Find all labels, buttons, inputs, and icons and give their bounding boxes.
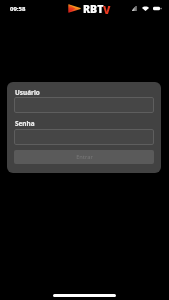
button[interactable]: Usuário [14, 97, 154, 113]
staticText: Entrar [76, 153, 93, 161]
button[interactable]: Senha [14, 129, 154, 145]
other: Wi-Fi [142, 6, 149, 11]
staticText: Senha [15, 119, 35, 128]
other: Battery [153, 6, 161, 11]
other: RBTV [66, 2, 108, 14]
staticText: RBT [83, 2, 104, 14]
staticText: Usuário [15, 88, 40, 97]
staticText: 09:58 [10, 5, 26, 13]
other: Cellular signal [132, 6, 137, 11]
staticText: V [103, 2, 111, 14]
